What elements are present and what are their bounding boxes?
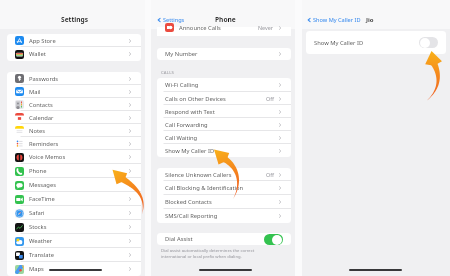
button[interactable]: Passwords: [7, 72, 141, 85]
staticText: Calendar: [29, 114, 127, 122]
button[interactable]: Call Forwarding: [157, 118, 291, 131]
staticText: Wi-Fi Calling: [165, 81, 277, 89]
staticText: Voice Memos: [29, 153, 127, 161]
button[interactable]: Safari: [7, 206, 141, 220]
button[interactable]: Translate: [7, 248, 141, 262]
button[interactable]: Phone: [7, 164, 141, 178]
button[interactable]: Dial Assist: [157, 233, 291, 245]
button[interactable]: SMS/Call Reporting: [157, 209, 291, 223]
staticText: Call Forwarding: [165, 121, 277, 129]
button[interactable]: Call Waiting: [157, 131, 291, 144]
staticText: Call Waiting: [165, 134, 277, 142]
button[interactable]: Call Blocking & Identification: [157, 181, 291, 195]
button[interactable]: Wi-Fi Calling: [157, 78, 291, 92]
staticText: Maps: [29, 265, 127, 273]
button[interactable]: Weather: [7, 234, 141, 248]
button[interactable]: Show My Caller ID: [157, 144, 291, 157]
button[interactable]: Announce Calls: [157, 27, 291, 36]
staticText: Weather: [29, 237, 127, 245]
button[interactable]: FaceTime: [7, 192, 141, 206]
staticText: Show My Caller ID: [314, 39, 419, 47]
button[interactable]: Stocks: [7, 220, 141, 234]
button[interactable]: App Store: [7, 34, 141, 47]
staticText: Off: [266, 95, 274, 102]
staticText: Phone: [215, 15, 236, 24]
button[interactable]: Reminders: [7, 137, 141, 150]
staticText: Show My Caller ID: [165, 147, 277, 155]
staticText: Respond with Text: [165, 108, 277, 116]
button[interactable]: Voice Memos: [7, 150, 141, 164]
staticText: Safari: [29, 209, 127, 217]
staticText: My Number: [165, 50, 277, 58]
staticText: Never: [258, 24, 274, 31]
staticText: Show My Caller ID: [313, 16, 361, 24]
button[interactable]: Maps: [7, 262, 141, 276]
button[interactable]: Respond with Text: [157, 105, 291, 118]
staticText: Phone: [29, 167, 127, 175]
staticText: Settings: [163, 16, 185, 24]
staticText: Silence Unknown Callers: [165, 171, 266, 179]
staticText: Settings: [61, 15, 89, 24]
button[interactable]: Calls on Other Devices: [157, 92, 291, 105]
button[interactable]: Contacts: [7, 98, 141, 111]
staticText: Contacts: [29, 101, 127, 109]
staticText: international or local prefix when diali…: [161, 254, 242, 260]
staticText: Dial assist automatically determines the…: [161, 248, 255, 254]
staticText: Passwords: [29, 75, 127, 83]
staticText: Stocks: [29, 223, 127, 231]
staticText: Off: [266, 171, 274, 178]
button[interactable]: Calendar: [7, 111, 141, 124]
button[interactable]: My Number: [157, 48, 291, 60]
staticText: Jio: [366, 16, 374, 24]
staticText: Call Blocking & Identification: [165, 184, 277, 192]
button[interactable]: Notes: [7, 124, 141, 137]
staticText: Notes: [29, 127, 127, 135]
staticText: App Store: [29, 37, 127, 45]
staticText: Mail: [29, 88, 127, 96]
button[interactable]: Show My Caller ID toggle: [419, 37, 438, 48]
staticText: FaceTime: [29, 195, 127, 203]
button[interactable]: Silence Unknown Callers: [157, 168, 291, 181]
staticText: Dial Assist: [165, 235, 264, 243]
button[interactable]: Show My Caller ID: [306, 16, 374, 24]
staticText: CALLS: [161, 69, 175, 75]
button[interactable]: Settings: [156, 16, 185, 24]
staticText: Messages: [29, 181, 127, 189]
button[interactable]: Messages: [7, 178, 141, 192]
button[interactable]: Mail: [7, 85, 141, 98]
staticText: Wallet: [29, 50, 127, 58]
staticText: Translate: [29, 251, 127, 259]
button[interactable]: Blocked Contacts: [157, 195, 291, 209]
staticText: Announce Calls: [179, 24, 258, 32]
button[interactable]: Dial Assist toggle: [264, 234, 283, 245]
staticText: Blocked Contacts: [165, 198, 277, 206]
staticText: Reminders: [29, 140, 127, 148]
button[interactable]: Wallet: [7, 47, 141, 61]
staticText: SMS/Call Reporting: [165, 212, 277, 220]
button[interactable]: Show My Caller ID: [306, 31, 446, 54]
staticText: Calls on Other Devices: [165, 95, 266, 103]
